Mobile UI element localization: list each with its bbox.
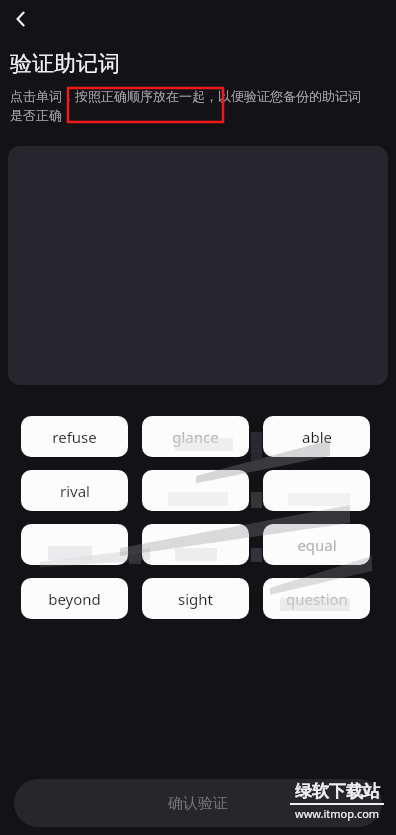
staticText: 验证助记词 (10, 50, 120, 78)
staticText: refuse (52, 427, 97, 447)
button[interactable]: 确认验证 (14, 779, 382, 827)
staticText: question (286, 589, 348, 609)
staticText: sight (178, 589, 213, 609)
staticText: equal (297, 535, 337, 555)
button[interactable] (263, 470, 370, 511)
button[interactable]: beyond (21, 578, 128, 619)
staticText: 点击单词， (10, 88, 75, 104)
button[interactable]: Back (4, 2, 38, 36)
staticText: 确认验证 (168, 794, 228, 813)
staticText: rival (60, 481, 90, 501)
button[interactable]: refuse (21, 416, 128, 457)
staticText: 绿软下载站 (295, 781, 380, 802)
staticText: 以便验证您备份的助记词 (218, 88, 361, 104)
staticText: 按照正确顺序放在一起， (75, 88, 218, 104)
button[interactable]: equal (263, 524, 370, 565)
button[interactable]: question (263, 578, 370, 619)
button[interactable]: able (263, 416, 370, 457)
staticText: able (302, 427, 332, 447)
staticText: glance (172, 427, 219, 447)
button[interactable] (142, 470, 249, 511)
button[interactable] (142, 524, 249, 565)
button[interactable]: glance (142, 416, 249, 457)
button[interactable] (21, 524, 128, 565)
button[interactable]: rival (21, 470, 128, 511)
button[interactable]: sight (142, 578, 249, 619)
staticText: www.itmop.com (295, 806, 380, 821)
staticText: 是否正确 (10, 107, 62, 123)
staticText: beyond (48, 589, 101, 609)
